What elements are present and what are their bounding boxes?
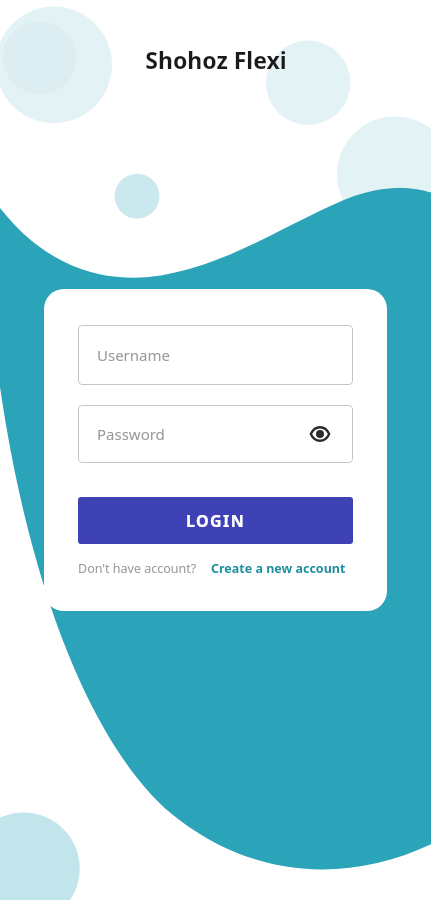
staticText: Create a new account <box>211 560 346 577</box>
button[interactable]: Show password <box>306 420 334 448</box>
staticText: Username <box>97 345 170 365</box>
button[interactable]: Username <box>78 325 353 385</box>
button[interactable]: LOGIN <box>78 497 353 544</box>
staticText: Don't have account? <box>78 560 197 577</box>
button[interactable]: Create a new account <box>211 560 346 577</box>
button[interactable]: Password <box>78 405 353 463</box>
staticText: LOGIN <box>186 510 246 532</box>
staticText: Password <box>97 424 165 444</box>
staticText: Shohoz Flexi <box>145 44 287 75</box>
